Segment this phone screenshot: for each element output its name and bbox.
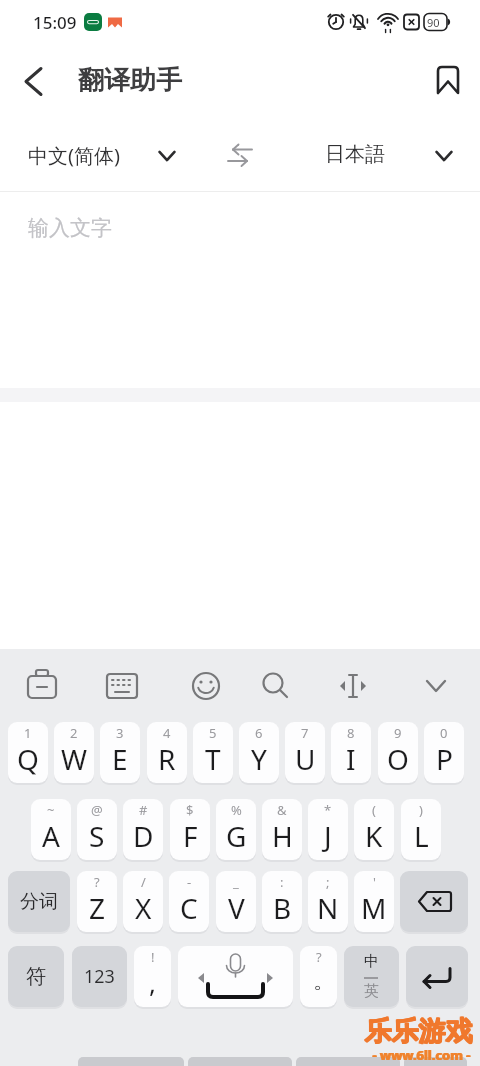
staticText: S	[89, 817, 105, 855]
staticText: 1	[24, 724, 32, 742]
button[interactable]: '	[354, 871, 394, 932]
staticText: 日本語	[325, 142, 385, 167]
staticText: C	[180, 889, 198, 927]
button[interactable]: ;	[308, 871, 348, 932]
button[interactable]: 3	[100, 722, 140, 783]
button[interactable]: -	[169, 871, 209, 932]
button[interactable]: 5	[193, 722, 233, 783]
staticText: B	[273, 889, 292, 927]
staticText: 2	[70, 724, 78, 742]
button[interactable]: ?	[77, 871, 117, 932]
staticText: 乐乐游戏	[365, 1014, 473, 1048]
button[interactable]	[222, 135, 258, 171]
staticText: 5	[209, 724, 217, 742]
staticText: #	[139, 801, 148, 819]
staticText: K	[365, 817, 383, 855]
staticText: 15:09	[33, 11, 77, 34]
staticText: 乐乐游戏	[365, 1015, 473, 1049]
staticText: 123	[84, 964, 115, 989]
button[interactable]: ~	[31, 799, 71, 860]
button[interactable]	[414, 664, 458, 708]
button[interactable]: 2	[54, 722, 94, 783]
staticText: *	[324, 801, 332, 819]
button[interactable]: 分词	[8, 871, 70, 932]
button[interactable]: ?	[300, 946, 337, 1007]
staticText: ;	[326, 873, 330, 891]
staticText: I	[346, 740, 356, 778]
button[interactable]: 0	[424, 722, 464, 783]
staticText: 分词	[20, 890, 58, 914]
button[interactable]: &	[262, 799, 302, 860]
button[interactable]: 符	[8, 946, 64, 1007]
button[interactable]	[406, 946, 468, 1007]
staticText: %	[231, 801, 242, 819]
staticText: _	[233, 873, 239, 891]
staticText: /	[141, 873, 146, 891]
button[interactable]: )	[401, 799, 441, 860]
staticText: H	[272, 817, 293, 855]
button[interactable]: 9	[378, 722, 418, 783]
button[interactable]: 7	[285, 722, 325, 783]
staticText: T	[205, 740, 221, 778]
staticText: V	[228, 889, 245, 927]
button[interactable]: %	[216, 799, 256, 860]
button[interactable]: $	[170, 799, 210, 860]
staticText: O	[387, 740, 409, 778]
button[interactable]: 中文(简体)	[0, 120, 200, 182]
staticText: J	[324, 817, 332, 855]
staticText: M	[361, 889, 387, 927]
staticText: Q	[17, 740, 39, 778]
staticText: ?	[94, 873, 100, 891]
button[interactable]: 6	[239, 722, 279, 783]
staticText: ~	[47, 801, 55, 819]
staticText: 。	[313, 967, 335, 995]
staticText: Y	[251, 740, 267, 778]
button[interactable]	[400, 871, 468, 932]
staticText: 英	[364, 982, 379, 1001]
staticText: 中	[364, 952, 379, 971]
button[interactable]: #	[123, 799, 163, 860]
button[interactable]	[20, 664, 64, 708]
staticText: G	[226, 817, 247, 855]
button[interactable]: !	[134, 946, 171, 1007]
staticText: -	[187, 873, 192, 891]
button[interactable]: /	[123, 871, 163, 932]
button[interactable]: 日本語	[300, 120, 480, 182]
button[interactable]	[253, 664, 297, 708]
staticText: '	[373, 873, 376, 891]
staticText: R	[158, 740, 176, 778]
button[interactable]: (	[354, 799, 394, 860]
button[interactable]: *	[308, 799, 348, 860]
staticText: @	[91, 801, 103, 819]
button[interactable]: @	[77, 799, 117, 860]
staticText: $	[186, 801, 194, 819]
staticText: 7	[301, 724, 309, 742]
staticText: - www.6ll.com -	[372, 1046, 470, 1064]
staticText: F	[183, 817, 198, 855]
staticText: 乐乐游戏	[364, 1015, 472, 1049]
button[interactable]	[178, 946, 293, 1007]
button[interactable]: 中	[344, 946, 399, 1007]
staticText: L	[414, 817, 429, 855]
staticText: 输入文字	[28, 215, 112, 241]
staticText: 翻译助手	[78, 64, 182, 97]
button[interactable]	[430, 60, 466, 100]
button[interactable]: 123	[72, 946, 127, 1007]
button[interactable]	[15, 66, 55, 96]
staticText: 4	[163, 724, 171, 742]
staticText: 8	[347, 724, 355, 742]
button[interactable]	[184, 664, 228, 708]
staticText: 中文(简体)	[28, 142, 120, 169]
button[interactable]	[100, 664, 144, 708]
button[interactable]	[331, 664, 375, 708]
staticText: 9	[394, 724, 402, 742]
button[interactable]: 8	[331, 722, 371, 783]
button[interactable]: _	[216, 871, 256, 932]
button[interactable]: :	[262, 871, 302, 932]
staticText: A	[42, 817, 60, 855]
staticText: !	[151, 948, 155, 966]
staticText: )	[419, 801, 423, 819]
button[interactable]: 1	[8, 722, 48, 783]
button[interactable]: 4	[147, 722, 187, 783]
staticText: Z	[89, 889, 106, 927]
